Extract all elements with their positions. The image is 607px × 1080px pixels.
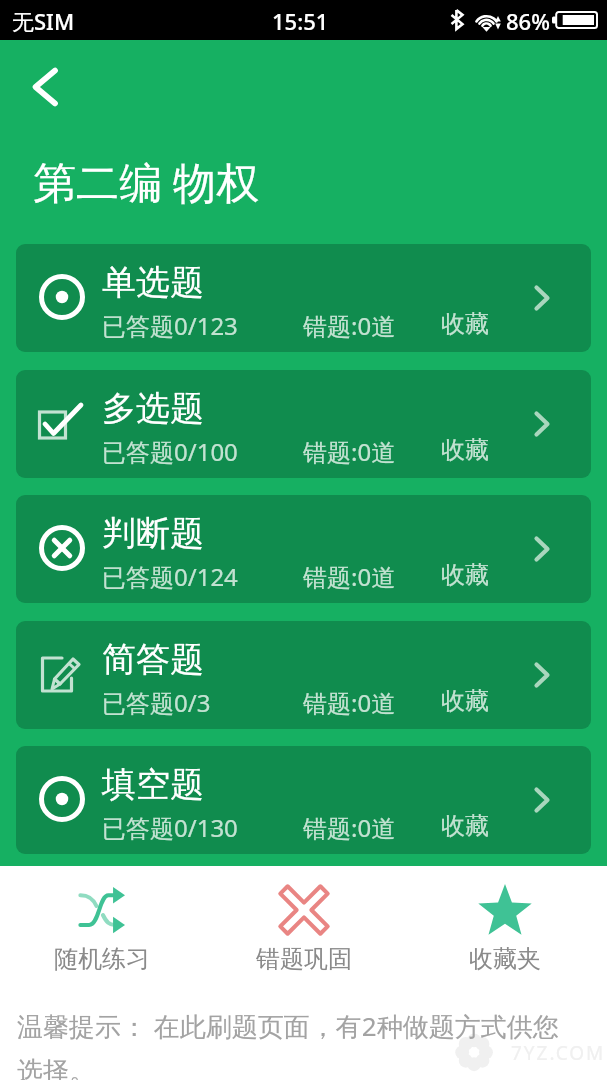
staticText: 无SIM (12, 6, 75, 36)
staticText: 已答题0/3 (102, 686, 211, 719)
staticText: 收藏 (441, 435, 489, 465)
button[interactable]: 判断题 (16, 495, 591, 603)
staticText: 已答题0/100 (102, 435, 238, 468)
staticText: 已答题0/124 (102, 560, 238, 593)
staticText: 7YZ.COM (511, 1040, 606, 1066)
staticText: 已答题0/130 (102, 811, 238, 844)
staticText: 收藏 (441, 686, 489, 716)
button[interactable]: 填空题 (16, 746, 591, 854)
staticText: 15:51 (272, 6, 329, 36)
button[interactable]: 单选题 (16, 244, 591, 352)
staticText: 第二编 物权 (33, 152, 260, 211)
staticText: 错题巩固 (256, 944, 352, 974)
staticText: 判断题 (102, 512, 204, 555)
button[interactable]: 收藏夹 (435, 884, 575, 974)
staticText: 错题:0道 (303, 309, 396, 342)
staticText: 收藏夹 (469, 944, 541, 974)
staticText: 收藏 (441, 560, 489, 590)
staticText: 随机练习 (54, 944, 150, 974)
staticText: 错题:0道 (303, 560, 396, 593)
button[interactable]: 错题巩固 (234, 884, 374, 974)
staticText: 已答题0/123 (102, 309, 238, 342)
staticText: 错题:0道 (303, 811, 396, 844)
staticText: 单选题 (102, 261, 204, 304)
button[interactable]: 随机练习 (32, 884, 172, 974)
staticText: 收藏 (441, 811, 489, 841)
staticText: 错题:0道 (303, 435, 396, 468)
button[interactable]: 多选题 (16, 370, 591, 478)
staticText: 多选题 (102, 387, 204, 430)
staticText: 错题:0道 (303, 686, 396, 719)
staticText: 收藏 (441, 309, 489, 339)
button[interactable]: Back (10, 58, 80, 116)
button[interactable]: 简答题 (16, 621, 591, 729)
staticText: 填空题 (102, 763, 204, 806)
staticText: 简答题 (102, 638, 204, 681)
staticText: 86% (506, 6, 550, 36)
staticText: 温馨提示： 在此刷题页面，有2种做题方式供您选择。 (17, 1008, 570, 1080)
